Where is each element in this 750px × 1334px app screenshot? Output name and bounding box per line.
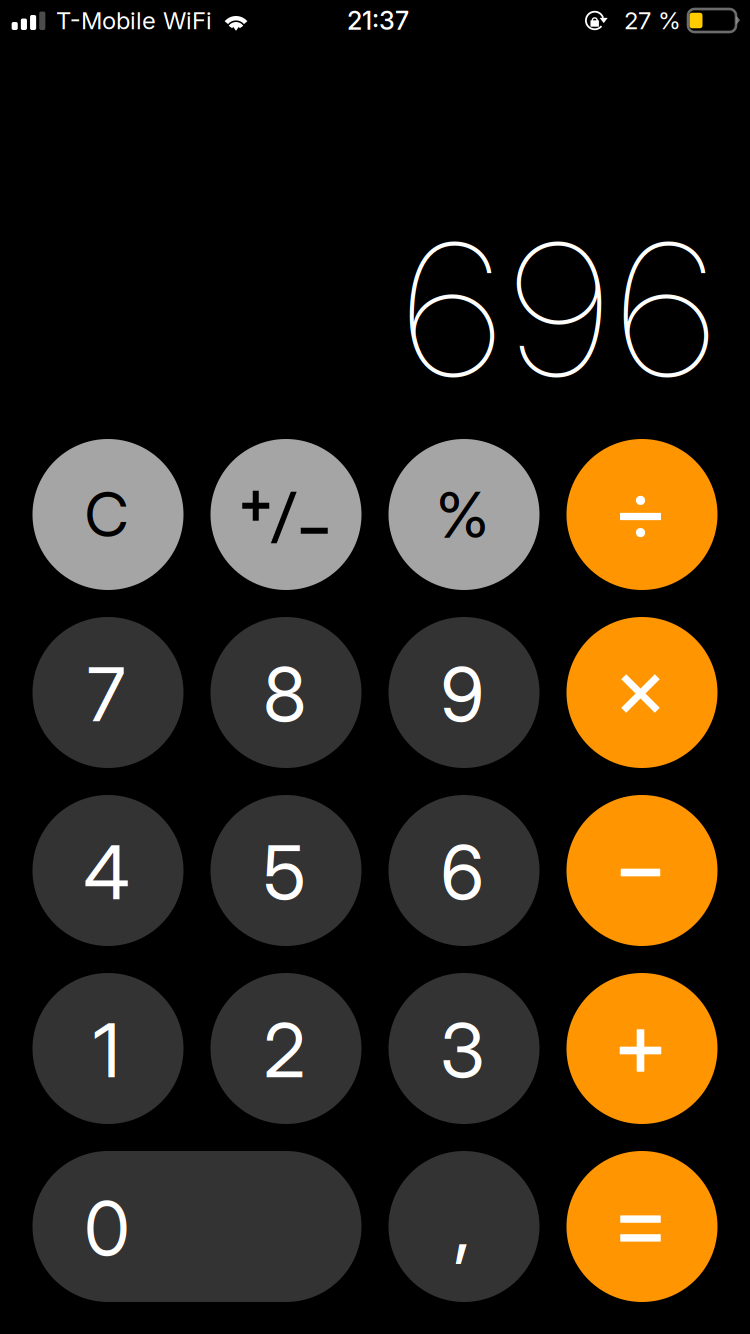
button[interactable]: 4	[32, 795, 183, 946]
button[interactable]: Decimal separator	[388, 1151, 539, 1302]
button[interactable]: 2	[210, 973, 361, 1124]
button[interactable]: Equals	[566, 1151, 717, 1302]
button[interactable]: Clear	[32, 439, 183, 590]
staticText: T-Mobile WiFi	[56, 6, 212, 35]
button[interactable]: 7	[32, 617, 183, 768]
staticText: 5	[263, 827, 306, 917]
button[interactable]: Multiply	[566, 617, 717, 768]
staticText: 6	[440, 827, 484, 917]
button[interactable]: 1	[32, 973, 183, 1124]
staticText: 8	[263, 649, 306, 739]
staticText: 3	[440, 1005, 485, 1095]
button[interactable]: 0	[32, 1151, 361, 1302]
staticText: C	[84, 477, 128, 552]
staticText: 27 %	[624, 6, 681, 35]
button[interactable]: 5	[210, 795, 361, 946]
staticText: 4	[83, 827, 129, 917]
button[interactable]: 6	[388, 795, 539, 946]
staticText: ,	[453, 1173, 471, 1273]
button[interactable]: Add	[566, 973, 717, 1124]
button[interactable]: 9	[388, 617, 539, 768]
staticText: 1	[93, 1005, 120, 1095]
button[interactable]: 8	[210, 617, 361, 768]
staticText: 696	[404, 198, 714, 421]
button[interactable]: Subtract	[566, 795, 717, 946]
staticText: 2	[263, 1005, 305, 1095]
staticText: 7	[87, 649, 126, 739]
button[interactable]: 3	[388, 973, 539, 1124]
staticText: 21:37	[347, 5, 409, 36]
button[interactable]: Divide	[566, 439, 717, 590]
staticText: 9	[440, 649, 484, 739]
button[interactable]: Percent	[388, 439, 539, 590]
staticText: %	[436, 477, 489, 553]
staticText: 0	[84, 1183, 130, 1273]
button[interactable]: Plus minus	[210, 439, 361, 590]
